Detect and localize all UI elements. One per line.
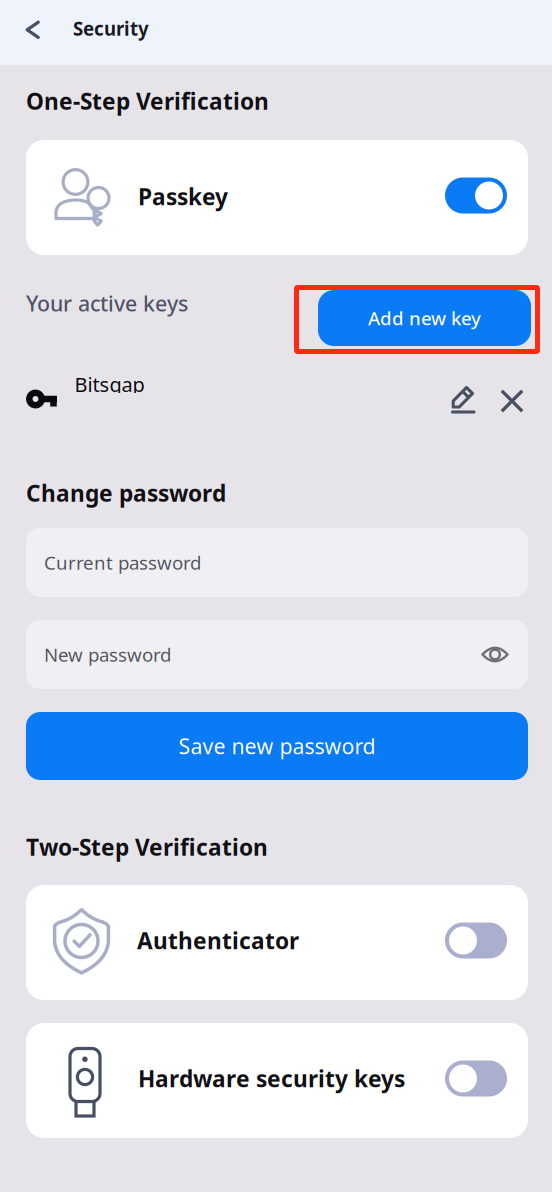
button[interactable]: Save new password <box>26 712 528 780</box>
button[interactable]: Current password <box>26 528 528 597</box>
staticText: Authenticator <box>137 925 299 955</box>
staticText: Save new password <box>178 732 375 760</box>
button[interactable]: New password <box>26 620 528 689</box>
button[interactable]: Passkey <box>26 140 528 255</box>
button[interactable]: Back <box>10 5 56 55</box>
button[interactable]: Delete key <box>500 389 524 413</box>
staticText: One-Step Verification <box>26 86 269 116</box>
button[interactable]: Add new key <box>318 290 531 346</box>
staticText: New password <box>44 642 171 667</box>
staticText: Security <box>73 16 149 41</box>
staticText: Change password <box>26 478 226 508</box>
button[interactable]: Edit key <box>451 382 477 414</box>
staticText: Two-Step Verification <box>26 832 268 862</box>
staticText: Passkey <box>138 181 228 211</box>
staticText: Add new key <box>368 306 481 330</box>
button[interactable]: Hardware security keys <box>26 1023 528 1138</box>
button[interactable]: Authenticator <box>26 885 528 1000</box>
staticText: Your active keys <box>26 289 188 317</box>
staticText: Current password <box>44 550 201 575</box>
staticText: Hardware security keys <box>138 1063 405 1093</box>
staticText: Bitsgap <box>74 371 144 398</box>
